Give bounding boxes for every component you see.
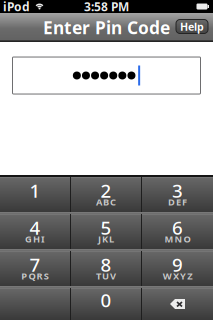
button[interactable]: 7	[0, 251, 70, 286]
button[interactable]: 4	[0, 214, 70, 249]
staticText: 8	[100, 252, 111, 277]
button[interactable]: 6	[142, 214, 213, 249]
staticText: Help	[180, 19, 204, 34]
staticText: 7	[29, 252, 40, 277]
button[interactable]: 9	[142, 251, 213, 286]
staticText: DEF	[168, 196, 187, 208]
button[interactable]: 1	[0, 177, 70, 212]
staticText: 9	[172, 252, 183, 277]
button[interactable]: 3	[142, 177, 213, 212]
staticText: 2	[100, 178, 111, 203]
staticText: Enter Pin Code	[43, 16, 170, 39]
staticText: 3	[172, 178, 183, 203]
staticText: ABC	[96, 196, 116, 208]
button[interactable]: Help	[176, 19, 208, 33]
staticText: GHI	[25, 233, 45, 245]
staticText: 4	[29, 215, 40, 240]
button[interactable]: 5	[71, 214, 141, 249]
staticText: TUV	[96, 270, 116, 282]
staticText: PQRS	[21, 270, 49, 282]
staticText: iPod	[3, 0, 30, 14]
staticText: 5	[100, 215, 111, 240]
staticText: 1	[29, 178, 40, 203]
button[interactable]: 2	[71, 177, 141, 212]
staticText: MNO	[164, 233, 191, 245]
staticText: 0	[100, 288, 111, 312]
staticText: WXYZ	[163, 270, 192, 282]
staticText: 6	[172, 215, 183, 240]
button[interactable]: 8	[71, 251, 141, 286]
staticText: 3:58 PM	[84, 0, 129, 14]
button[interactable]: 0	[71, 288, 141, 320]
staticText: JKL	[98, 233, 114, 245]
button[interactable]: Delete	[142, 288, 213, 320]
